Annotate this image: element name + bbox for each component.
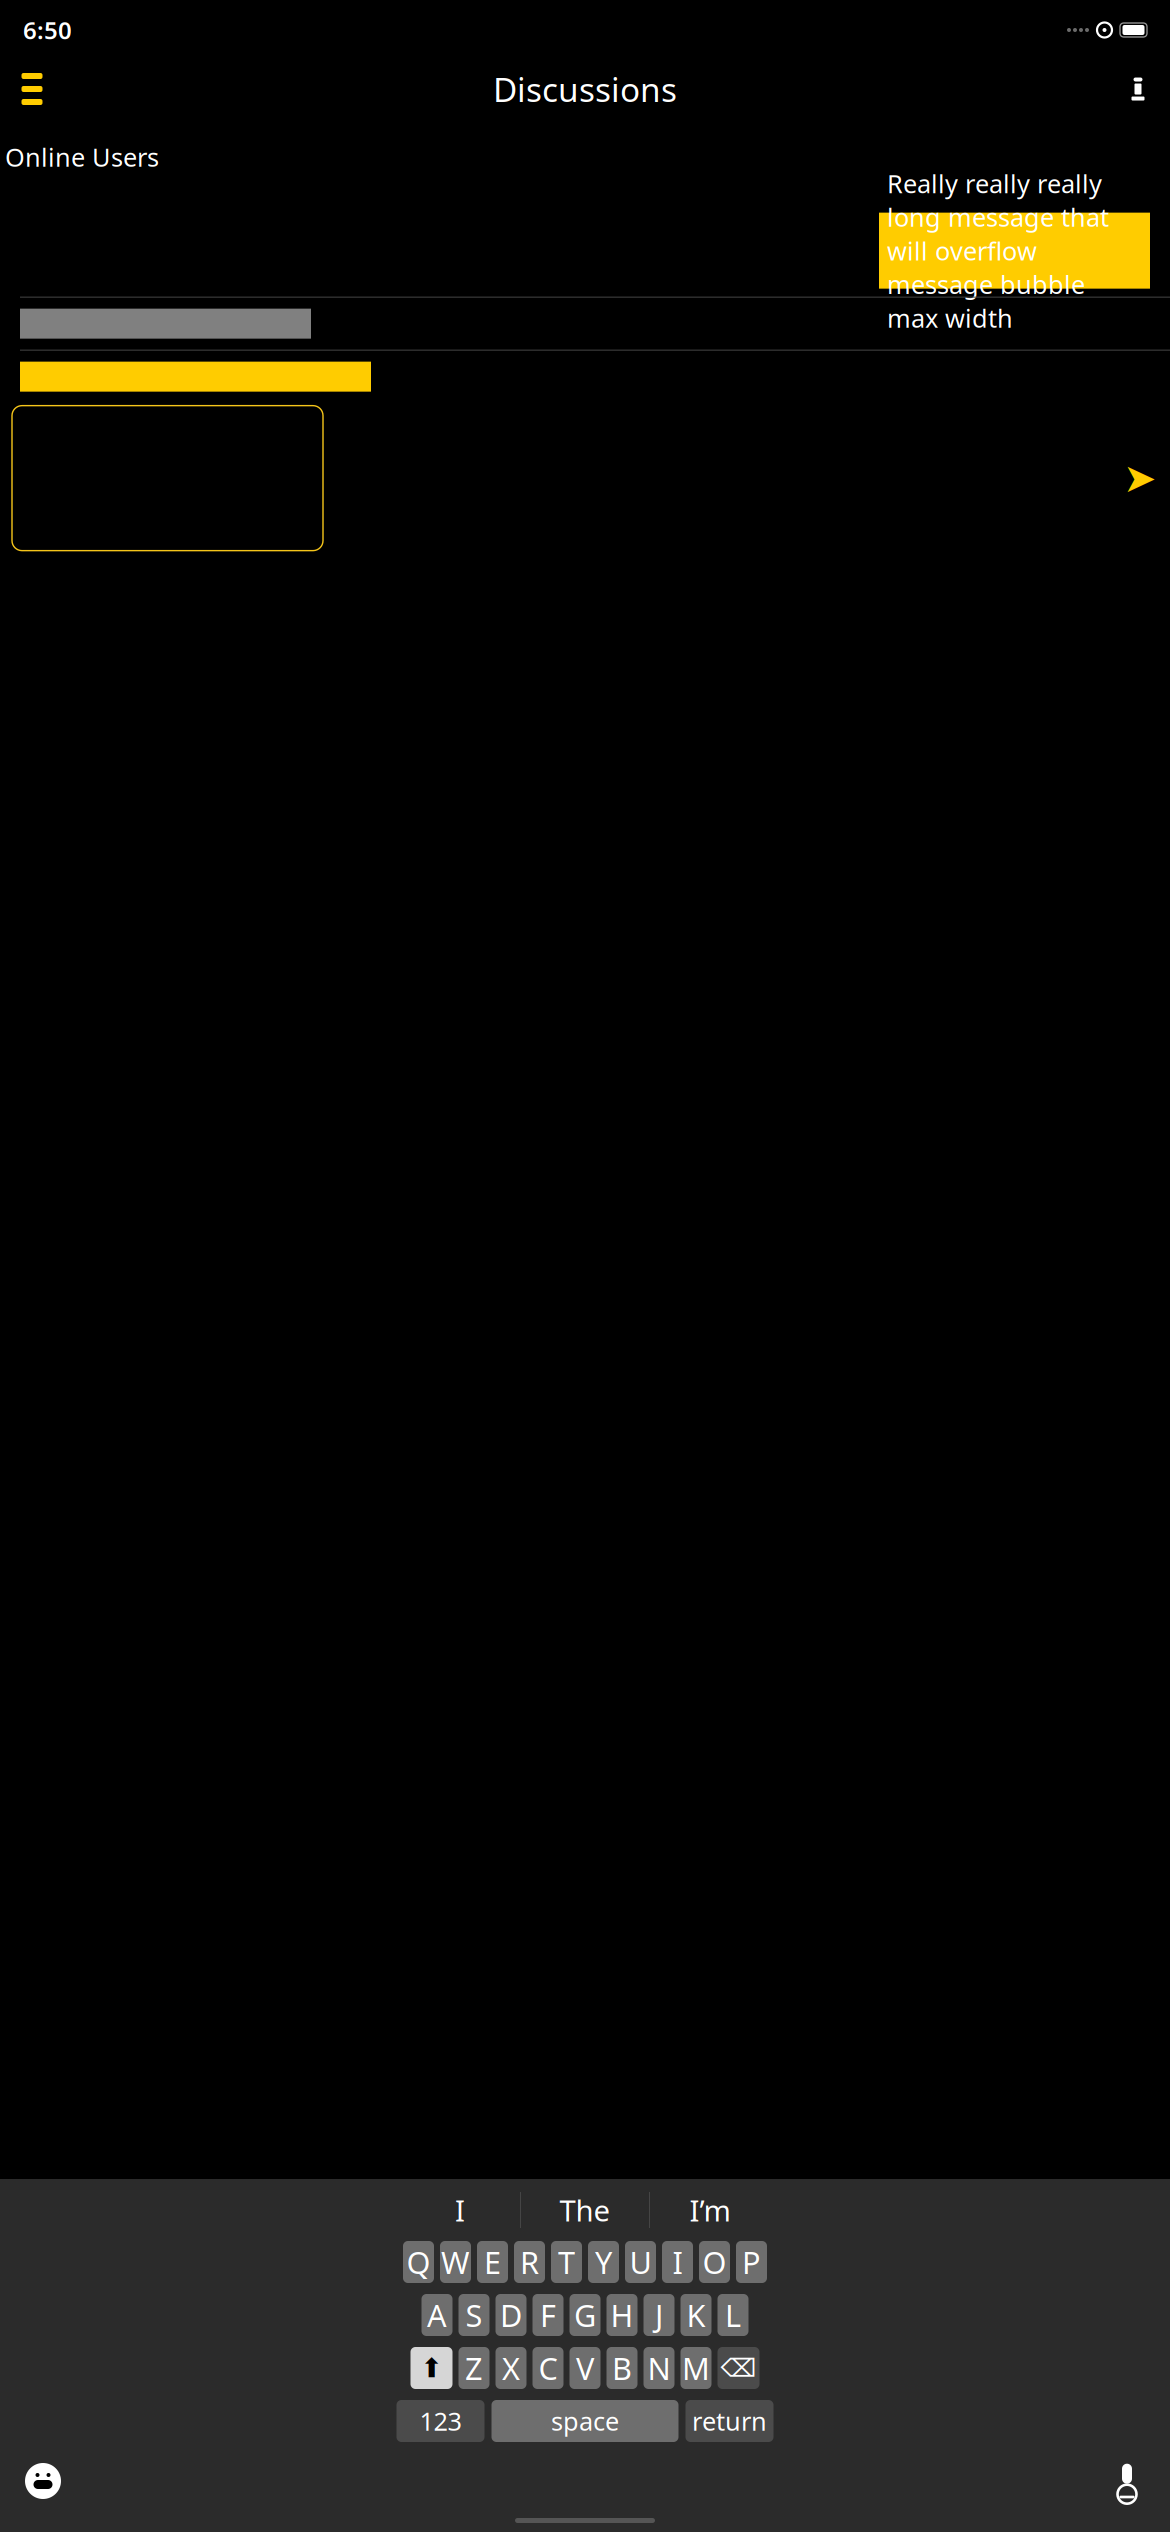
staticText: W — [441, 2242, 470, 2282]
button[interactable]: H — [606, 2294, 637, 2336]
staticText: return — [692, 2404, 767, 2438]
button[interactable]: N — [643, 2347, 674, 2389]
staticText: ⌫ — [720, 2354, 756, 2382]
staticText: D — [500, 2295, 522, 2335]
staticText: Online Users — [5, 140, 159, 174]
staticText: L — [725, 2295, 741, 2335]
staticText: 123 — [419, 2404, 461, 2438]
staticText: T — [558, 2242, 575, 2282]
button[interactable]: K — [680, 2294, 711, 2336]
staticText: 6:50 — [23, 14, 72, 46]
button[interactable]: Send — [1114, 452, 1166, 504]
staticText: I — [672, 2242, 682, 2282]
staticText: I — [455, 2190, 465, 2229]
staticText: Q — [406, 2242, 430, 2282]
staticText: Really really really long message that w… — [887, 166, 1109, 335]
button[interactable]: I — [400, 2185, 520, 2235]
button[interactable]: S — [458, 2294, 489, 2336]
button[interactable]: D — [495, 2294, 526, 2336]
staticText: P — [742, 2242, 761, 2282]
staticText: Y — [595, 2242, 612, 2282]
button[interactable]: 123 — [396, 2400, 484, 2442]
button[interactable]: J — [643, 2294, 674, 2336]
button[interactable]: M — [680, 2347, 711, 2389]
staticText: A — [427, 2295, 447, 2335]
button[interactable]: Emoji — [16, 2454, 70, 2508]
button[interactable]: V — [569, 2347, 600, 2389]
staticText: S — [465, 2295, 482, 2335]
button[interactable]: E — [477, 2241, 508, 2283]
button[interactable]: I — [662, 2241, 693, 2283]
button[interactable]: W — [440, 2241, 471, 2283]
staticText: K — [686, 2295, 705, 2335]
staticText: R — [520, 2242, 539, 2282]
staticText: ➤ — [1123, 455, 1157, 501]
staticText: ⬆ — [420, 2353, 442, 2383]
button[interactable]: return — [685, 2400, 773, 2442]
staticText: space — [551, 2404, 619, 2438]
staticText: B — [612, 2348, 632, 2388]
staticText: U — [629, 2242, 651, 2282]
button[interactable]: R — [514, 2241, 545, 2283]
button[interactable]: C — [532, 2347, 563, 2389]
button[interactable]: space — [491, 2400, 678, 2442]
staticText: F — [540, 2295, 556, 2335]
button[interactable]: ⌫ — [717, 2347, 759, 2389]
button[interactable]: P — [736, 2241, 767, 2283]
staticText: H — [610, 2295, 633, 2335]
button[interactable]: The — [521, 2185, 649, 2235]
button[interactable]: Dictate — [1100, 2454, 1154, 2508]
staticText: I’m — [689, 2190, 730, 2229]
staticText: J — [655, 2295, 663, 2335]
staticText: E — [484, 2242, 501, 2282]
button[interactable]: X — [495, 2347, 526, 2389]
button[interactable]: I’m — [650, 2185, 770, 2235]
staticText: X — [502, 2348, 520, 2388]
button[interactable]: Q — [403, 2241, 434, 2283]
button[interactable]: G — [569, 2294, 600, 2336]
staticText: M — [682, 2348, 710, 2388]
staticText: O — [702, 2242, 726, 2282]
button[interactable]: L — [717, 2294, 748, 2336]
staticText: The — [559, 2190, 610, 2229]
button[interactable]: B — [606, 2347, 637, 2389]
button[interactable]: O — [699, 2241, 730, 2283]
staticText: Z — [465, 2348, 483, 2388]
button[interactable]: T — [551, 2241, 582, 2283]
button[interactable]: Z — [458, 2347, 489, 2389]
button[interactable]: F — [532, 2294, 563, 2336]
staticText: G — [574, 2295, 596, 2335]
button[interactable]: U — [625, 2241, 656, 2283]
button[interactable]: ⬆ — [410, 2347, 452, 2389]
button[interactable]: Info — [1115, 66, 1161, 112]
button[interactable]: Menu — [9, 66, 55, 112]
staticText: N — [647, 2348, 670, 2388]
staticText: Discussions — [493, 67, 677, 111]
button[interactable]: A — [421, 2294, 452, 2336]
button[interactable]: Y — [588, 2241, 619, 2283]
staticText: V — [576, 2348, 594, 2388]
staticText: C — [538, 2348, 557, 2388]
